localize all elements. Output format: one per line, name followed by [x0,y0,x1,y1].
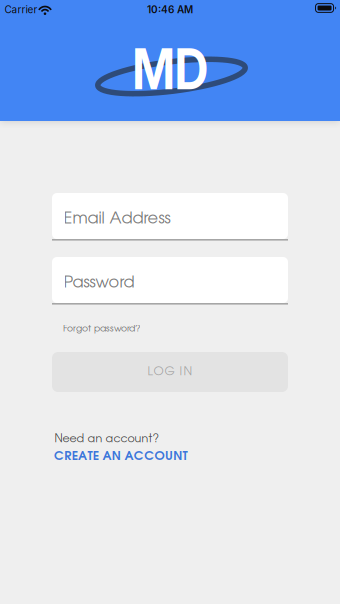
staticText: T [183,451,188,462]
staticText: Carrier [4,3,37,16]
staticText: 10:46 AM [147,3,193,16]
button[interactable]: Password [52,257,288,305]
staticText: A [102,451,111,462]
staticText: Need an account? [54,434,159,444]
staticText: T [87,451,92,462]
staticText: N [112,451,121,462]
staticText: N [183,366,192,377]
staticText: O [153,366,163,377]
staticText: U [165,451,173,462]
staticText: G [164,366,174,377]
staticText: E [72,451,78,462]
staticText: C [144,451,154,462]
staticText: C [54,451,64,462]
button[interactable]: Email Address [52,193,288,241]
button[interactable]: LOG IN [52,352,288,392]
staticText: A [78,451,87,462]
staticText: O [154,451,164,462]
staticText: Forgot password? [63,325,140,333]
staticText: L [147,366,152,377]
staticText: MD [125,35,214,103]
staticText: A [124,451,133,462]
staticText: E [93,451,99,462]
staticText: Password [63,275,134,290]
staticText: I [179,366,182,377]
staticText: C [134,451,144,462]
button[interactable]: CREATE AN ACCOUNT [54,449,290,465]
staticText: N [173,451,182,462]
staticText: R [64,451,71,462]
staticText: Email Address [63,211,170,226]
button[interactable]: Forgot password? [63,322,299,336]
